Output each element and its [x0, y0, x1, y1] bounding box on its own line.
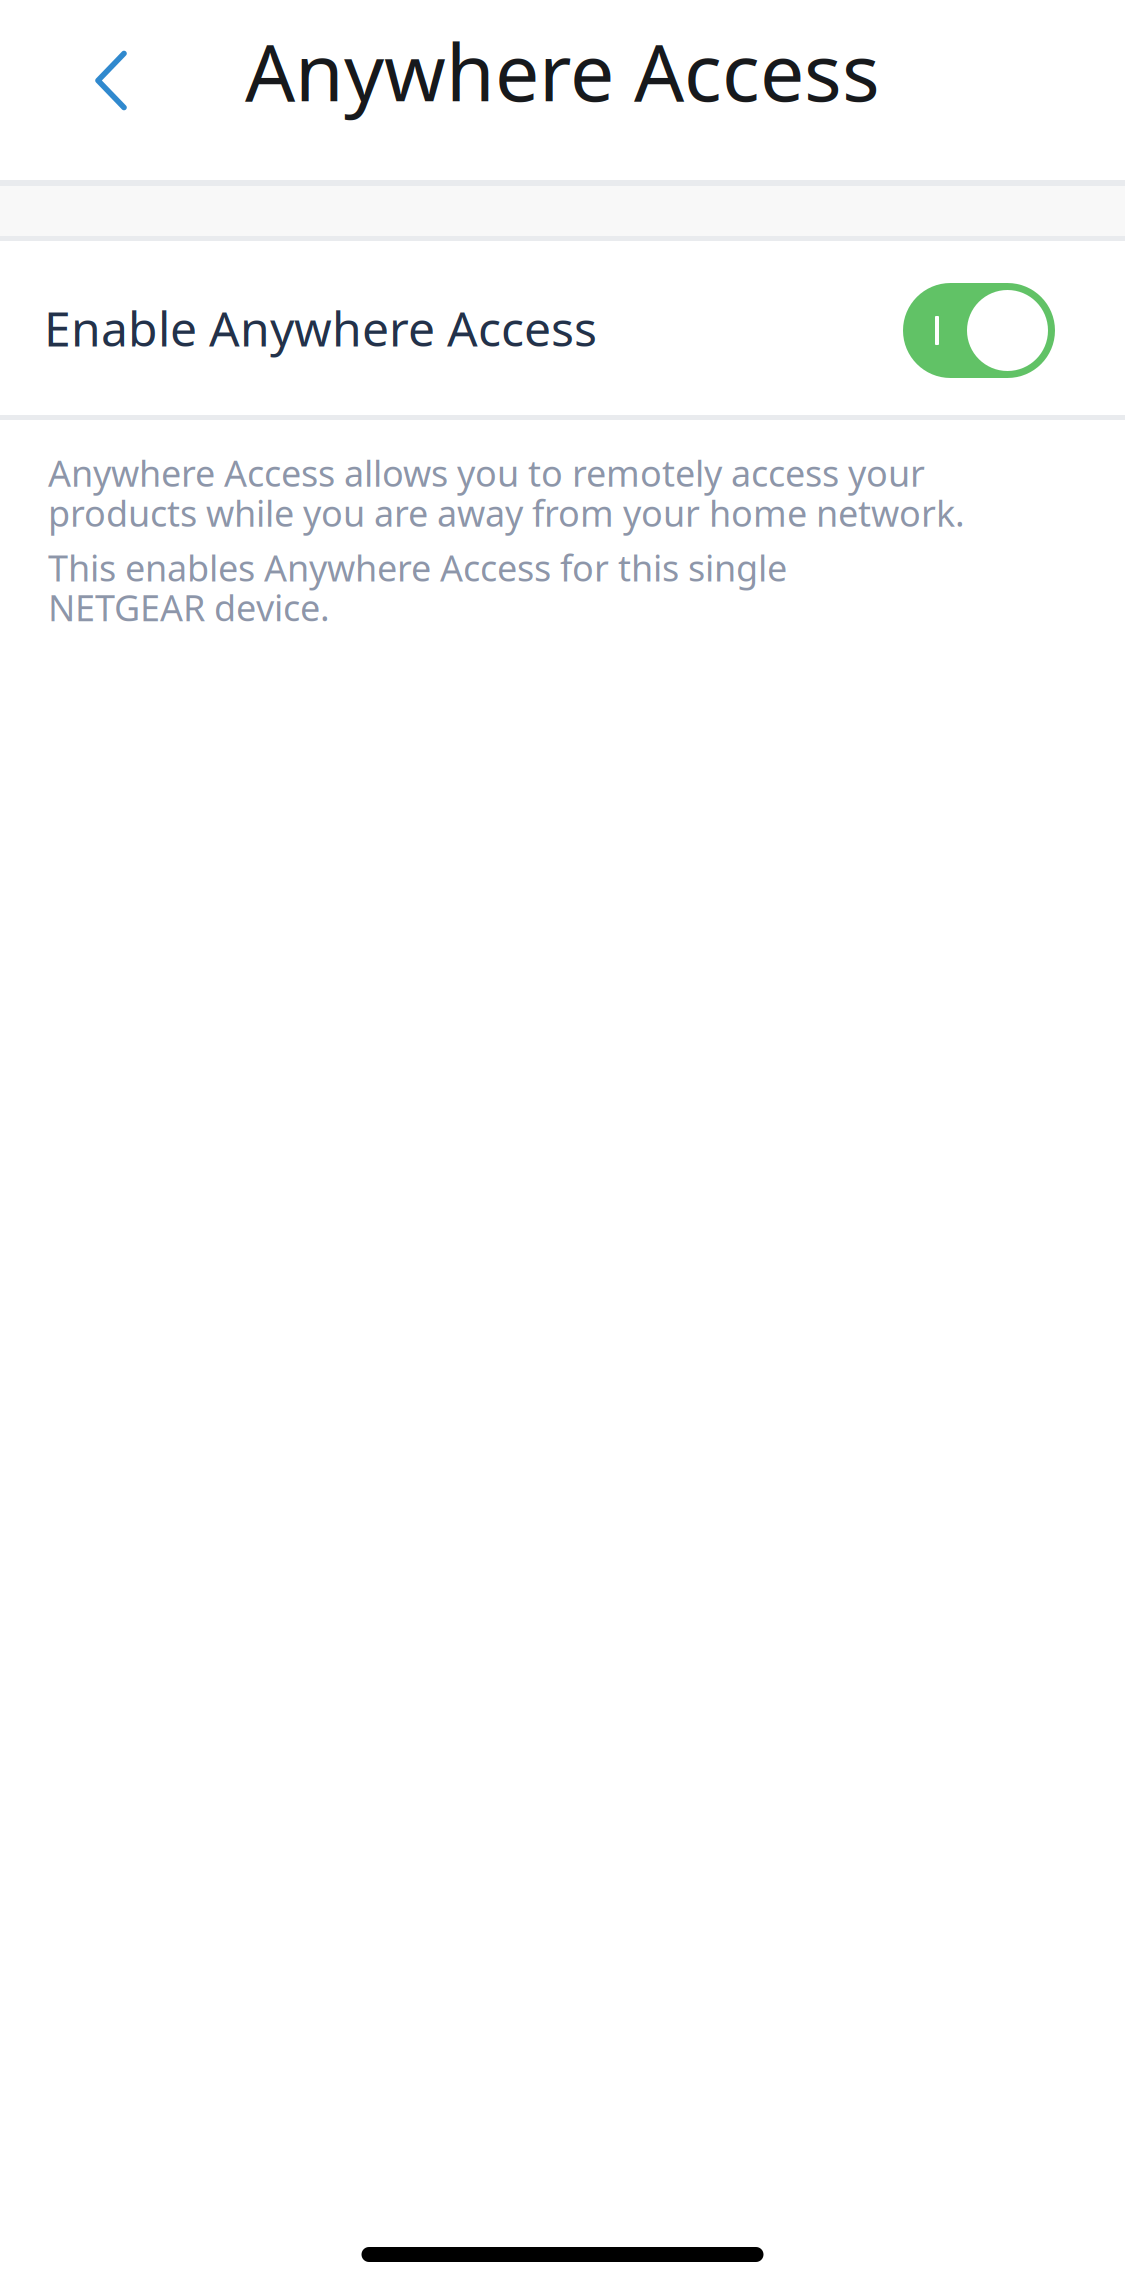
staticText: This enables Anywhere Access for this si…: [48, 544, 787, 631]
button[interactable]: Back: [0, 0, 226, 180]
button[interactable]: Enable Anywhere Access: [0, 241, 1125, 415]
staticText: Enable Anywhere Access: [44, 296, 597, 360]
staticText: Anywhere Access allows you to remotely a…: [48, 449, 965, 537]
staticText: Anywhere Access: [245, 18, 880, 123]
